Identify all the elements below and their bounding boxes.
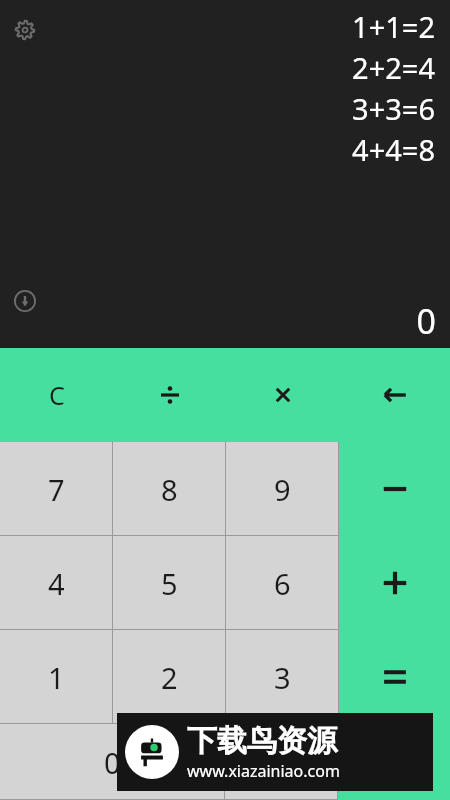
staticText: 3+3=6 [352,89,435,128]
button[interactable]: 4+4=8 [352,129,435,170]
button[interactable]: 7 [0,442,113,536]
staticText: 4 [48,564,65,603]
staticText: 5 [161,564,178,603]
staticText: 7 [48,470,65,509]
button[interactable]: 4 [0,536,113,630]
button[interactable]: 3 [226,630,339,724]
button[interactable]: Download history [9,285,41,317]
staticText: 6 [274,564,291,603]
button[interactable]: Add [339,536,450,630]
button[interactable]: Equals [338,724,450,800]
button[interactable]: . [225,724,338,800]
staticText: 2 [161,658,178,697]
staticText: 1 [48,658,65,697]
button[interactable]: 1+1=2 [352,6,435,47]
staticText: 3 [274,658,291,697]
staticText: 8 [161,470,178,509]
button[interactable]: Subtract [339,442,450,536]
staticText: 2+2=4 [352,48,435,87]
button[interactable]: 2+2=4 [352,47,435,88]
staticText: 0 [416,298,436,344]
button[interactable]: 2 [113,630,226,724]
staticText: www.xiazainiao.com [187,760,340,782]
button[interactable]: Settings [9,14,41,46]
staticText: 0 [104,743,121,782]
button[interactable]: Divide [113,348,226,442]
staticText: C [49,378,65,412]
button[interactable]: 1 [0,630,113,724]
button[interactable]: C [0,348,113,442]
staticText: . [278,743,286,782]
staticText: 4+4=8 [352,130,435,169]
button[interactable]: 8 [113,442,226,536]
staticText: 9 [274,470,291,509]
button[interactable]: Backspace [339,348,450,442]
staticText: 1+1=2 [352,7,435,46]
button[interactable]: Multiply [226,348,339,442]
button[interactable]: 6 [226,536,339,630]
button[interactable]: 3+3=6 [352,88,435,129]
staticText: 下载鸟资源 [187,722,337,760]
button[interactable]: Equals [339,630,450,724]
button[interactable]: 9 [226,442,339,536]
button[interactable]: 0 [0,724,225,800]
button[interactable]: 5 [113,536,226,630]
